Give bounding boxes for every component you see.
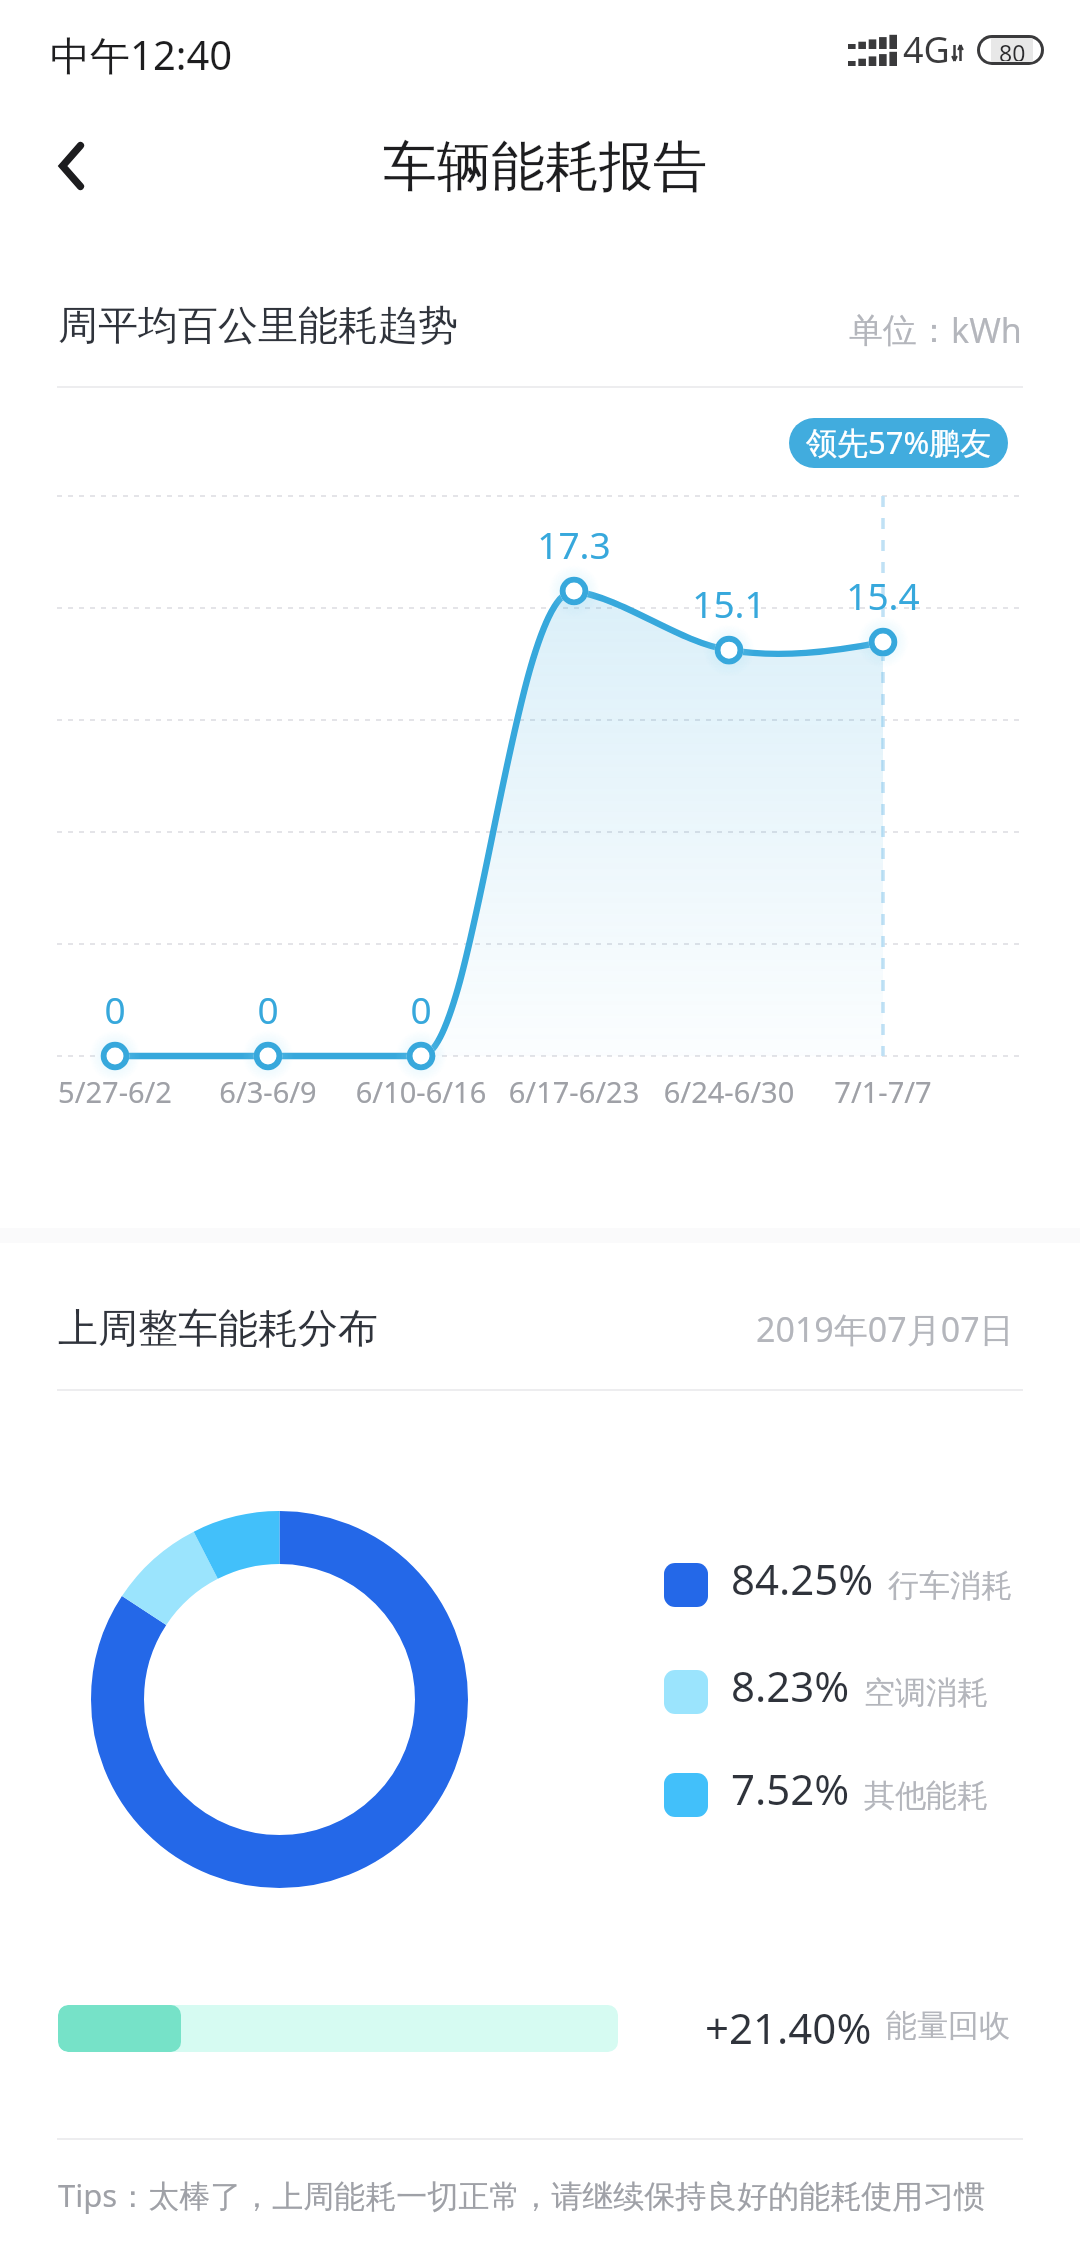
- staticText: 7.52%: [731, 1760, 850, 1817]
- staticText: 6/3-6/9: [168, 1072, 368, 1111]
- staticText: 15.1: [659, 578, 799, 628]
- staticText: 行车消耗: [888, 1566, 1012, 1605]
- staticText: 0: [45, 984, 185, 1034]
- staticText: kWh: [951, 307, 1022, 353]
- staticText: 15.4: [813, 570, 953, 620]
- staticText: 5/27-6/2: [15, 1072, 215, 1111]
- button[interactable]: Back: [19, 126, 124, 206]
- staticText: 0: [351, 984, 491, 1034]
- staticText: 6/10-6/16: [321, 1072, 521, 1111]
- staticText: 6/17-6/23: [474, 1072, 674, 1111]
- staticText: 领先57%鹏友: [806, 421, 992, 463]
- button[interactable]: 领先57%鹏友: [789, 418, 1008, 468]
- staticText: 8.23%: [731, 1657, 850, 1714]
- staticText: 周平均百公里能耗趋势: [58, 300, 458, 350]
- staticText: 空调消耗: [864, 1673, 988, 1712]
- button[interactable]: 84.25%: [664, 1556, 1012, 1613]
- button[interactable]: 8.23%: [664, 1663, 988, 1720]
- staticText: 中午12:40: [50, 27, 233, 82]
- staticText: 80: [999, 38, 1026, 61]
- staticText: 17.3: [504, 519, 644, 569]
- staticText: 单位：: [849, 309, 951, 352]
- staticText: 车辆能耗报告: [383, 133, 707, 201]
- staticText: 7/1-7/7: [783, 1072, 983, 1111]
- staticText: 84.25%: [731, 1550, 874, 1607]
- staticText: 4G: [903, 25, 950, 74]
- staticText: 6/24-6/30: [629, 1072, 829, 1111]
- staticText: 其他能耗: [864, 1776, 988, 1815]
- staticText: +21.40%: [705, 1999, 872, 2056]
- staticText: 0: [198, 984, 338, 1034]
- staticText: 能量回收: [886, 2006, 1010, 2045]
- staticText: 上周整车能耗分布: [58, 1303, 378, 1353]
- staticText: Tips：太棒了，上周能耗一切正常，请继续保持良好的能耗使用习惯: [58, 2174, 986, 2216]
- staticText: 2019年07月07日: [756, 1306, 1014, 1352]
- button[interactable]: 7.52%: [664, 1766, 988, 1823]
